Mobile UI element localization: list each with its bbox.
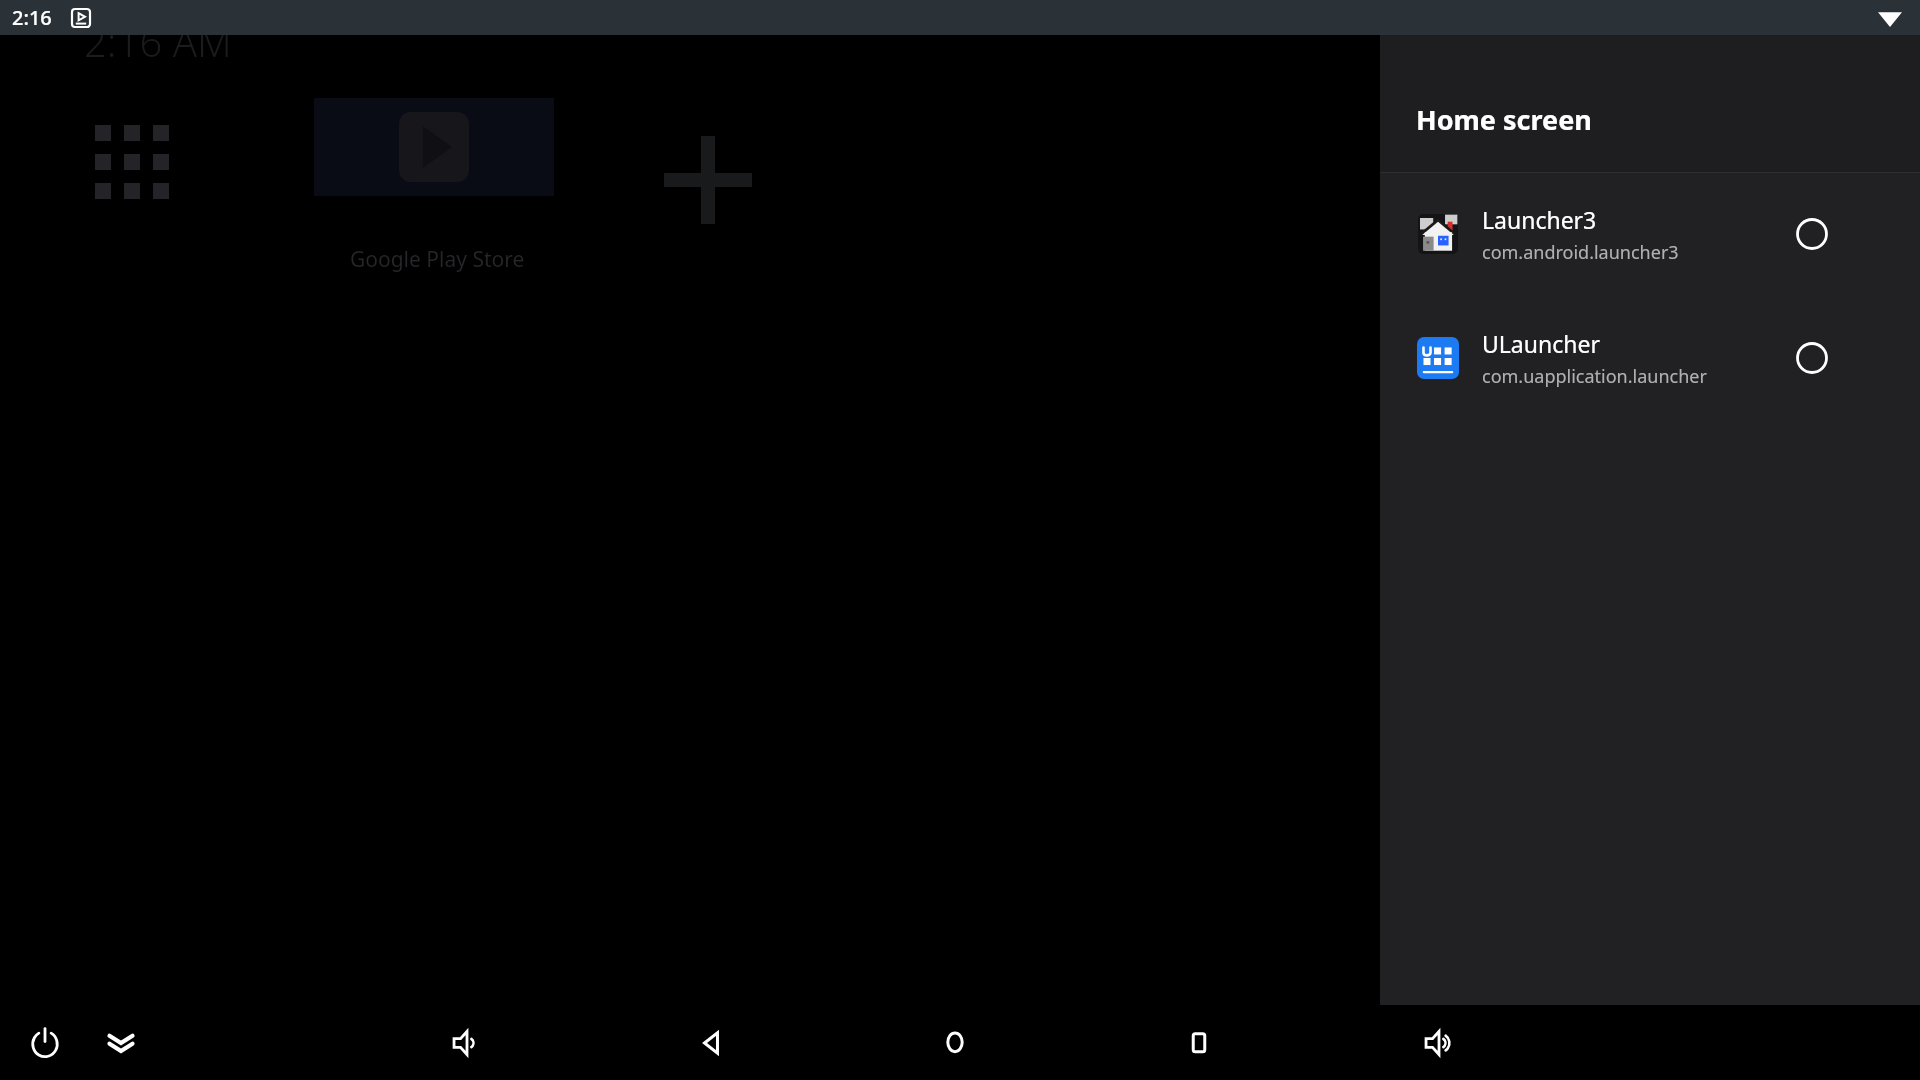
- button[interactable]: Volume down: [449, 1025, 485, 1061]
- button[interactable]: Back: [693, 1025, 729, 1061]
- staticText: Launcher3: [1482, 204, 1597, 235]
- staticText: 2:16: [12, 4, 52, 31]
- button[interactable]: Recents: [1181, 1025, 1217, 1061]
- button[interactable]: Volume up: [1421, 1025, 1457, 1061]
- button[interactable]: Power: [27, 1025, 63, 1061]
- button[interactable]: Collapse: [103, 1025, 139, 1061]
- staticText: com.android.launcher3: [1482, 240, 1679, 265]
- staticText: com.uapplication.launcher: [1482, 364, 1707, 389]
- button[interactable]: Launcher3: [1380, 197, 1920, 271]
- button[interactable]: Home: [937, 1025, 973, 1061]
- staticText: Google Play Store: [350, 245, 525, 274]
- staticText: ULauncher: [1482, 328, 1600, 359]
- staticText: 2:16 AM: [84, 14, 232, 68]
- staticText: Home screen: [1416, 101, 1592, 138]
- button[interactable]: ULauncher: [1380, 321, 1920, 395]
